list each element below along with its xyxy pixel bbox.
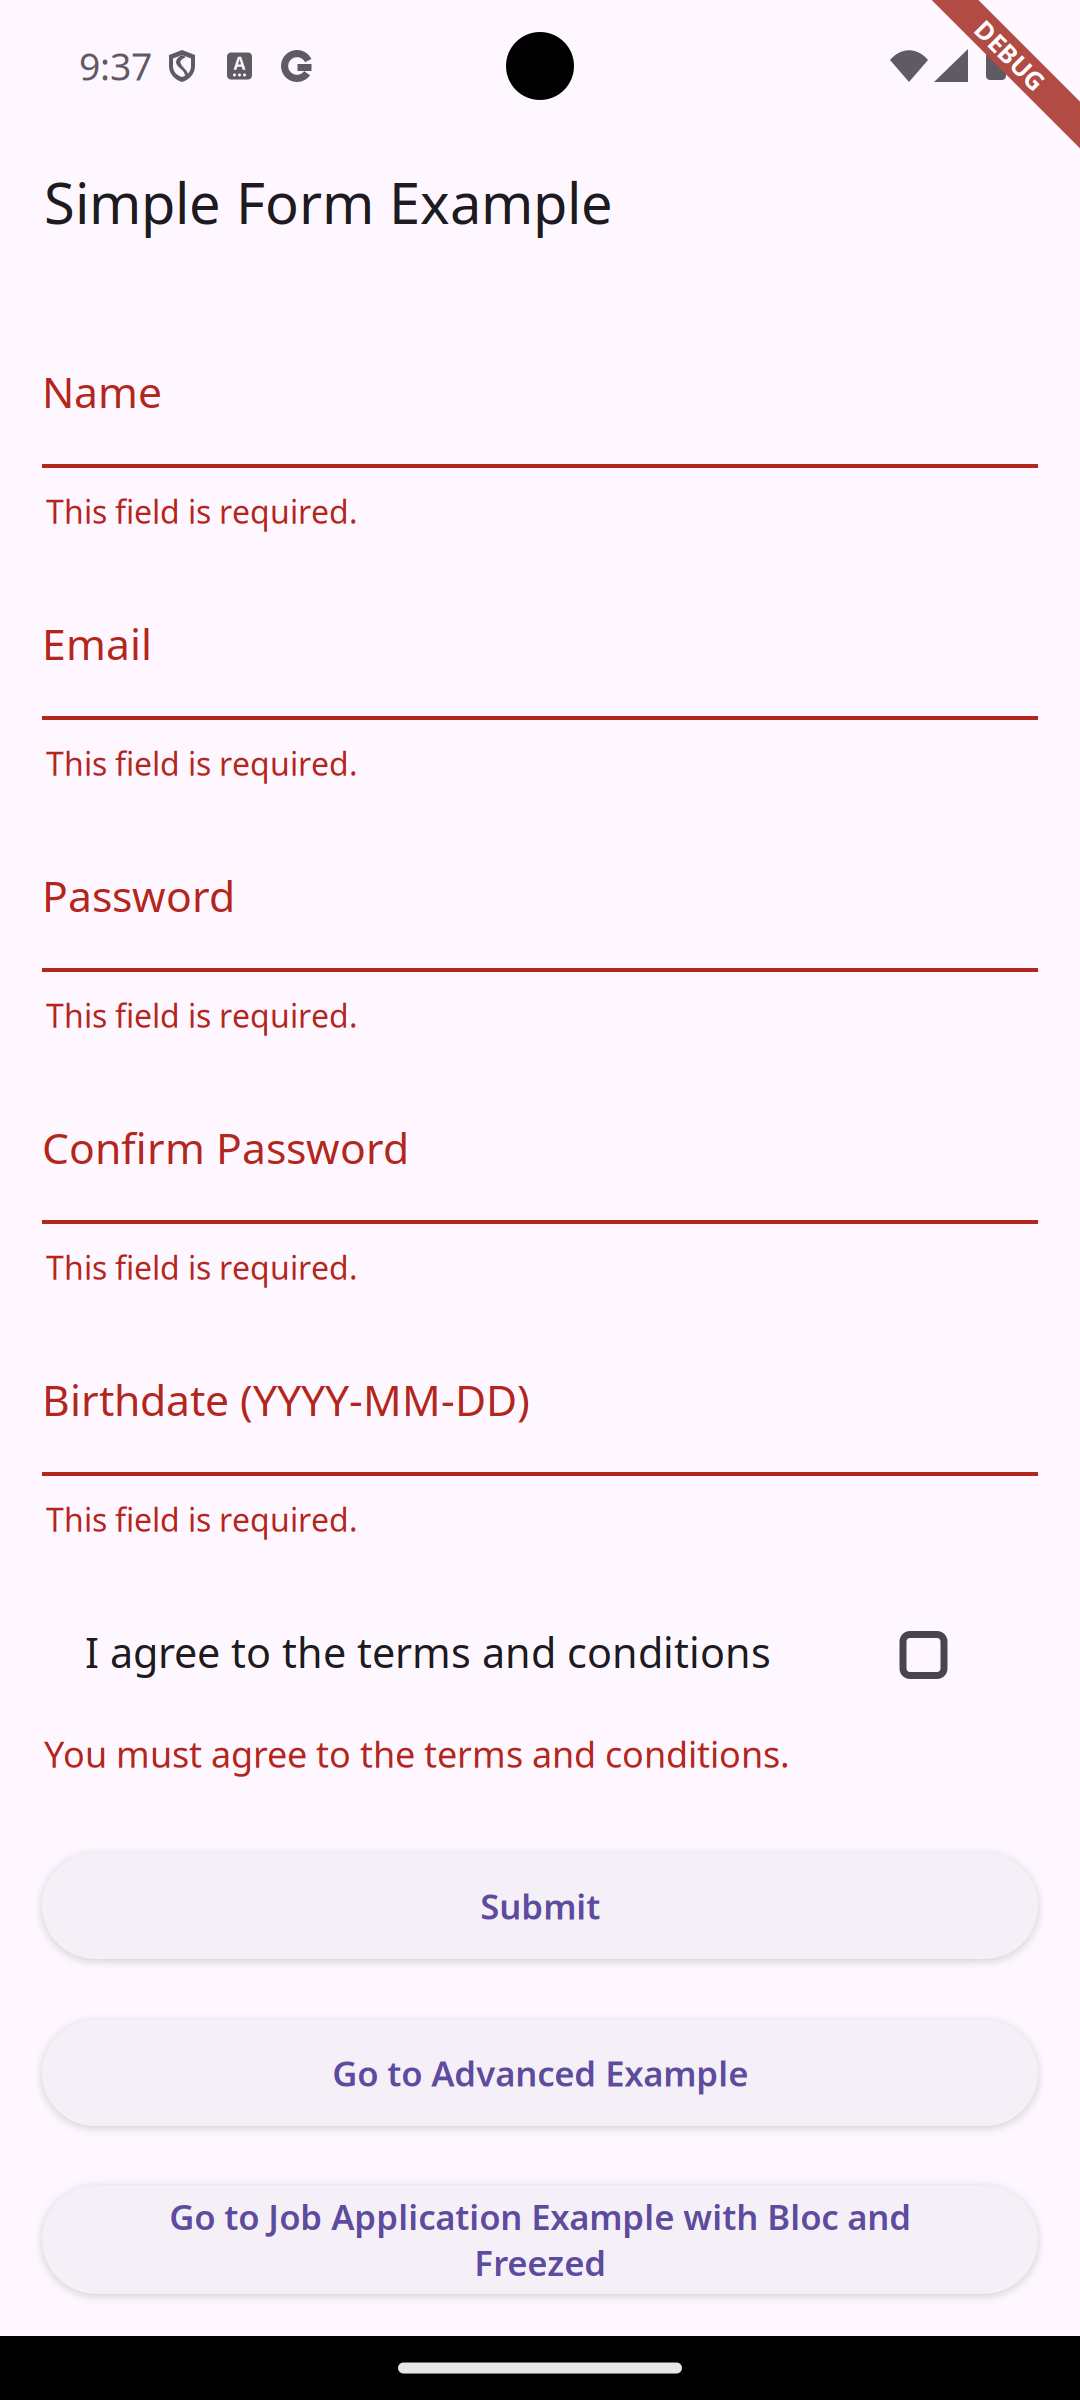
staticText: Simple Form Example	[44, 165, 613, 239]
button[interactable]: Submit	[42, 1853, 1038, 1959]
staticText: 9:37	[79, 41, 152, 91]
staticText: Confirm Password	[42, 1119, 409, 1176]
staticText: This field is required.	[46, 994, 358, 1036]
staticText: You must agree to the terms and conditio…	[44, 1730, 790, 1778]
staticText: Go to Advanced Example	[332, 2050, 748, 2096]
button[interactable]: Birthdate (YYYY-MM-DD)	[42, 1356, 1038, 1608]
button[interactable]: I agree to the terms and conditions	[42, 1600, 1038, 1704]
staticText: This field is required.	[46, 1246, 358, 1288]
button[interactable]: Confirm Password	[42, 1104, 1038, 1356]
button[interactable]: Name	[42, 348, 1038, 600]
staticText: This field is required.	[46, 1498, 358, 1540]
staticText: DEBUG	[966, 38, 1053, 72]
staticText: Name	[42, 363, 162, 420]
button[interactable]: Go to Job Application Example with Bloc …	[42, 2185, 1038, 2294]
staticText: Submit	[480, 1883, 600, 1929]
staticText: I agree to the terms and conditions	[85, 1625, 771, 1679]
staticText: A	[233, 51, 245, 74]
button[interactable]: Go to Advanced Example	[42, 2020, 1038, 2126]
staticText: This field is required.	[46, 742, 358, 784]
button[interactable]: Password	[42, 852, 1038, 1104]
button[interactable]: Email	[42, 600, 1038, 852]
staticText: Birthdate (YYYY-MM-DD)	[42, 1371, 530, 1428]
staticText: This field is required.	[46, 490, 358, 532]
staticText: Password	[42, 867, 235, 924]
staticText: Email	[42, 615, 152, 672]
staticText: Go to Job Application Example with Bloc …	[169, 2193, 911, 2286]
